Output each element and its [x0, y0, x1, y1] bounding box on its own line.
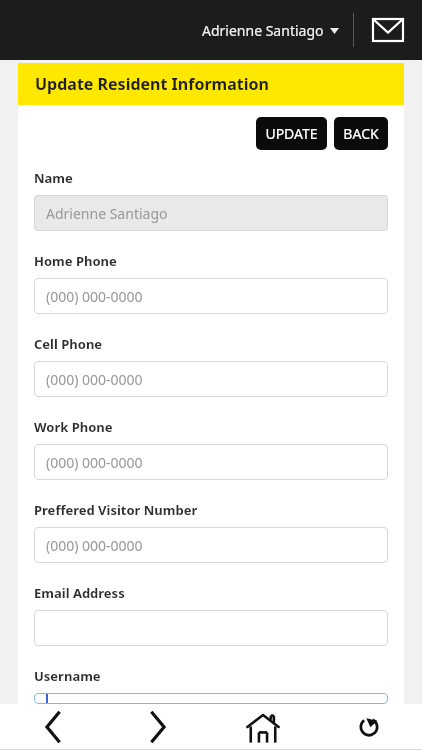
button[interactable]: Messages — [368, 10, 408, 50]
staticText: Username — [34, 667, 101, 685]
button[interactable]: Adrienne Santiago — [198, 15, 343, 46]
button[interactable]: Back — [0, 704, 105, 750]
button[interactable]: (000) 000-0000 — [34, 278, 388, 314]
staticText: Name — [34, 169, 73, 187]
staticText: UPDATE — [265, 124, 318, 143]
button[interactable]: Refresh — [316, 704, 422, 750]
staticText: (000) 000-0000 — [46, 453, 143, 472]
staticText: Email Address — [34, 584, 125, 602]
staticText: Adrienne Santiago — [202, 21, 324, 40]
button[interactable] — [34, 693, 388, 704]
button[interactable]: (000) 000-0000 — [34, 361, 388, 397]
button[interactable]: UPDATE — [256, 117, 327, 150]
staticText: Adrienne Santiago — [46, 204, 168, 223]
staticText: (000) 000-0000 — [46, 536, 143, 555]
staticText: Home Phone — [34, 252, 117, 270]
button[interactable] — [34, 610, 388, 646]
staticText: (000) 000-0000 — [46, 370, 143, 389]
button[interactable]: Home — [210, 704, 316, 750]
staticText: Cell Phone — [34, 335, 103, 353]
button[interactable]: (000) 000-0000 — [34, 527, 388, 563]
button[interactable]: Adrienne Santiago — [34, 195, 388, 231]
button[interactable]: (000) 000-0000 — [34, 444, 388, 480]
button[interactable]: BACK — [334, 117, 388, 150]
button[interactable]: Forward — [105, 704, 210, 750]
staticText: Update Resident Information — [35, 73, 269, 95]
staticText: Work Phone — [34, 418, 113, 436]
staticText: BACK — [343, 124, 379, 143]
staticText: Preffered Visitor Number — [34, 501, 198, 519]
staticText: (000) 000-0000 — [46, 287, 143, 306]
